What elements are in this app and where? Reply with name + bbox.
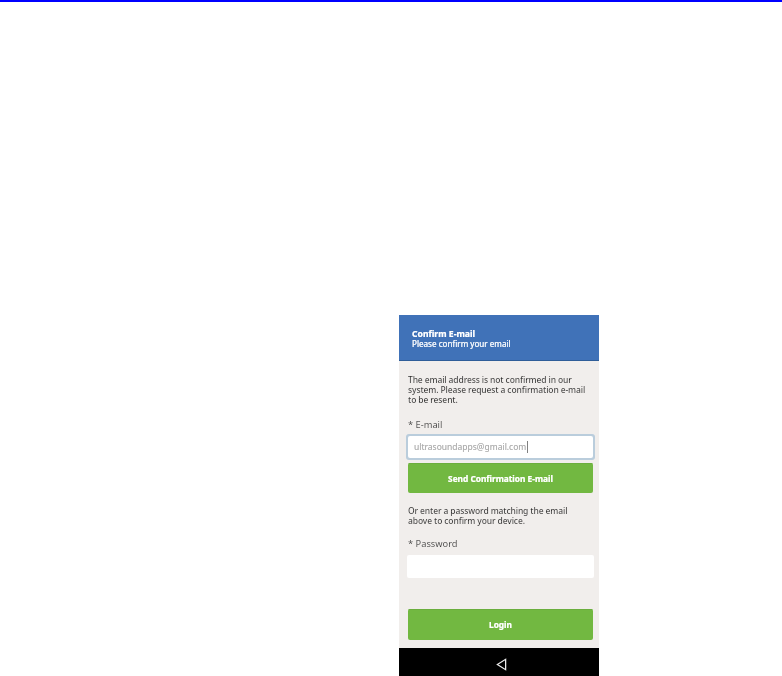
button[interactable]: Login (408, 609, 593, 640)
button[interactable]: Send Confirmation E-mail (408, 463, 593, 493)
staticText: Send Confirmation E-mail (448, 473, 553, 484)
button[interactable]: Back (493, 656, 509, 672)
staticText: Or enter a password matching the email a… (408, 505, 593, 526)
staticText: * Password (408, 537, 458, 550)
button[interactable]: ultrasoundapps@gmail.com (408, 436, 593, 458)
staticText: Login (489, 619, 512, 630)
staticText: Confirm E-mail (412, 328, 476, 340)
staticText: * E-mail (408, 418, 443, 431)
staticText: The email address is not confirmed in ou… (408, 374, 593, 405)
staticText: ultrasoundapps@gmail.com (414, 441, 527, 453)
staticText: Please confirm your email (412, 338, 511, 349)
